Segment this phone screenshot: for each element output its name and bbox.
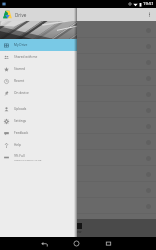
button[interactable]: [0, 214, 156, 230]
staticText: Using 10.4 GB of 115 GB: [14, 158, 42, 161]
button[interactable]: [0, 166, 156, 182]
button[interactable]: Feedback: [0, 127, 77, 139]
button[interactable]: Shared with me: [0, 51, 77, 63]
button[interactable]: [0, 22, 156, 38]
staticText: Settings: [14, 119, 27, 123]
staticText: New: [75, 230, 82, 234]
button[interactable]: [0, 198, 156, 214]
button[interactable]: 9% Full: [0, 151, 77, 163]
staticText: On device: [14, 91, 29, 95]
staticText: Feedback: [14, 131, 29, 135]
staticText: Drive: [15, 12, 27, 18]
button[interactable]: [0, 118, 156, 134]
staticText: 9% Full: [14, 154, 25, 158]
button[interactable]: [0, 38, 156, 54]
button[interactable]: My Drive: [0, 39, 77, 51]
button[interactable]: [0, 54, 156, 70]
button[interactable]: On device: [0, 87, 77, 99]
button[interactable]: [0, 134, 156, 150]
button[interactable]: More options: [145, 10, 154, 19]
staticText: 19:51: [143, 1, 154, 7]
button[interactable]: Drive: [0, 8, 77, 21]
staticText: Recent: [14, 79, 25, 83]
button[interactable]: Back: [39, 238, 50, 249]
button[interactable]: [0, 102, 156, 118]
button[interactable]: Home: [71, 238, 82, 249]
button[interactable]: [0, 70, 156, 86]
button[interactable]: Help: [0, 139, 77, 151]
button[interactable]: [0, 150, 156, 166]
button[interactable]: New: [75, 223, 82, 234]
staticText: Uploads: [14, 107, 27, 111]
staticText: Help: [14, 143, 21, 147]
button[interactable]: [0, 86, 156, 102]
staticText: My Drive: [14, 43, 28, 47]
staticText: Shared with me: [14, 55, 38, 59]
button[interactable]: Uploads: [0, 103, 77, 115]
button[interactable]: Recent: [0, 75, 77, 87]
button[interactable]: [0, 182, 156, 198]
button[interactable]: Settings: [0, 115, 77, 127]
button[interactable]: Starred: [0, 63, 77, 75]
staticText: Starred: [14, 67, 26, 71]
button[interactable]: Recent apps: [103, 238, 114, 249]
